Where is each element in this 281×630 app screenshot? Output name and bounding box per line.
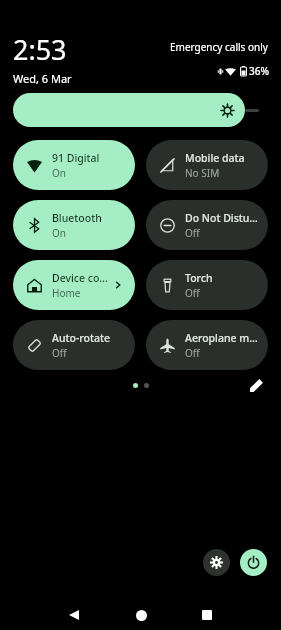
staticText: Bluetooth <box>52 211 102 225</box>
button[interactable]: Auto-rotate <box>13 320 135 370</box>
staticText: 2:53 <box>13 31 67 68</box>
staticText: 91 Digital <box>52 151 100 165</box>
staticText: No SIM <box>185 166 220 180</box>
button[interactable]: Mobile data <box>146 140 268 190</box>
button[interactable]: Back <box>62 603 86 627</box>
staticText: Emergency calls only <box>170 40 268 54</box>
button[interactable]: Bluetooth <box>13 200 135 250</box>
button[interactable]: Recents <box>195 603 219 627</box>
staticText: Off <box>185 226 200 240</box>
staticText: Aeroplane mode <box>185 331 260 345</box>
button[interactable]: Torch <box>146 260 268 310</box>
staticText: Do Not Disturb <box>185 211 260 225</box>
button[interactable]: Device contro.. <box>13 260 135 310</box>
button[interactable]: Aeroplane mode <box>146 320 268 370</box>
staticText: Auto-rotate <box>52 331 110 345</box>
staticText: Torch <box>185 271 213 285</box>
staticText: Wed, 6 Mar <box>13 71 72 86</box>
staticText: On <box>52 166 66 180</box>
staticText: Device contro.. <box>52 271 113 285</box>
staticText: On <box>52 226 66 240</box>
button[interactable]: Home <box>129 603 153 627</box>
staticText: 36% <box>249 64 269 78</box>
staticText: Off <box>185 286 200 300</box>
button[interactable]: Power <box>240 549 267 576</box>
button[interactable]: Brightness <box>13 93 245 127</box>
staticText: Home <box>52 286 81 300</box>
button[interactable]: 91 Digital <box>13 140 135 190</box>
button[interactable]: Edit tiles <box>243 372 269 398</box>
button[interactable]: Settings <box>203 549 230 576</box>
staticText: Off <box>52 346 67 360</box>
staticText: Off <box>185 346 200 360</box>
button[interactable]: Do Not Disturb <box>146 200 268 250</box>
staticText: Mobile data <box>185 151 245 165</box>
